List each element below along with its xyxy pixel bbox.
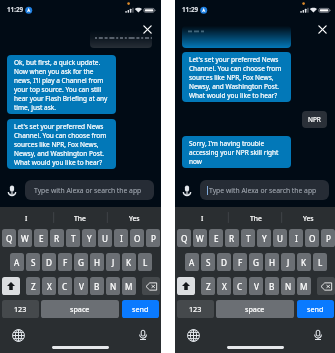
button[interactable]: Yes bbox=[107, 207, 161, 229]
button[interactable]: V bbox=[74, 277, 88, 295]
button[interactable]: space bbox=[41, 300, 119, 318]
button[interactable]: Y bbox=[257, 229, 271, 247]
button[interactable]: W bbox=[18, 229, 32, 247]
button[interactable]: A bbox=[185, 253, 199, 271]
button[interactable]: Backspace bbox=[142, 277, 160, 295]
button[interactable]: Type with Alexa or search the app bbox=[200, 180, 329, 200]
button[interactable]: U bbox=[98, 229, 112, 247]
button[interactable]: Sorry, I'm having trouble accessing your… bbox=[182, 136, 291, 168]
button[interactable]: R bbox=[225, 229, 239, 247]
button[interactable]: NPR bbox=[302, 111, 327, 128]
button[interactable]: Z bbox=[201, 277, 215, 295]
button[interactable]: The bbox=[229, 207, 282, 229]
staticText: space bbox=[245, 304, 265, 314]
button[interactable]: C bbox=[233, 277, 247, 295]
button[interactable]: Change keyboard language bbox=[187, 329, 200, 342]
staticText: space bbox=[70, 304, 90, 314]
button[interactable]: F bbox=[233, 253, 247, 271]
staticText: Let's set your preferred News Channel. Y… bbox=[14, 122, 111, 167]
button[interactable]: Dictate bbox=[138, 330, 148, 340]
button[interactable]: O bbox=[130, 229, 144, 247]
button[interactable]: Backspace bbox=[317, 277, 335, 295]
staticText: H bbox=[269, 257, 276, 268]
button[interactable]: B bbox=[265, 277, 279, 295]
button[interactable]: I bbox=[289, 229, 303, 247]
button[interactable]: I bbox=[175, 207, 229, 229]
staticText: C bbox=[237, 281, 243, 292]
button[interactable]: space bbox=[216, 300, 294, 318]
button[interactable]: T bbox=[66, 229, 80, 247]
button[interactable]: T bbox=[241, 229, 255, 247]
button[interactable]: 123 bbox=[177, 300, 214, 318]
button[interactable]: P bbox=[146, 229, 160, 247]
staticText: B bbox=[269, 281, 275, 292]
button[interactable]: 123 bbox=[2, 300, 39, 318]
staticText: Type with Alexa or search the app bbox=[209, 186, 317, 195]
button[interactable]: Q bbox=[2, 229, 16, 247]
button[interactable]: W bbox=[193, 229, 207, 247]
button[interactable]: U bbox=[273, 229, 287, 247]
button[interactable]: O bbox=[305, 229, 319, 247]
button[interactable]: G bbox=[74, 253, 88, 271]
button[interactable]: K bbox=[297, 253, 311, 271]
button[interactable]: F bbox=[58, 253, 72, 271]
button[interactable]: J bbox=[106, 253, 120, 271]
button[interactable]: N bbox=[106, 277, 120, 295]
button[interactable]: P bbox=[321, 229, 335, 247]
button[interactable]: H bbox=[265, 253, 279, 271]
button[interactable]: Y bbox=[82, 229, 96, 247]
button[interactable]: A bbox=[10, 253, 24, 271]
button[interactable]: L bbox=[138, 253, 152, 271]
button[interactable]: D bbox=[217, 253, 231, 271]
button[interactable]: Let's set your preferred News Channel. Y… bbox=[7, 119, 116, 169]
button[interactable]: E bbox=[34, 229, 48, 247]
button[interactable]: Z bbox=[26, 277, 40, 295]
button[interactable]: X bbox=[42, 277, 56, 295]
button[interactable]: G bbox=[249, 253, 263, 271]
button[interactable]: D bbox=[42, 253, 56, 271]
button[interactable]: R bbox=[50, 229, 64, 247]
button[interactable]: send bbox=[297, 300, 334, 318]
button[interactable]: S bbox=[201, 253, 215, 271]
staticText: V bbox=[79, 281, 84, 292]
button[interactable]: M bbox=[297, 277, 311, 295]
button[interactable]: Type with Alexa or search the app bbox=[25, 180, 154, 200]
button[interactable]: Voice input bbox=[180, 183, 194, 197]
staticText: W bbox=[21, 233, 29, 244]
button[interactable]: Yes bbox=[282, 207, 335, 229]
button[interactable]: M bbox=[122, 277, 136, 295]
staticText: F bbox=[63, 257, 68, 268]
button[interactable]: I bbox=[114, 229, 128, 247]
button[interactable]: Ok, but first, a quick update. Now when … bbox=[7, 55, 116, 114]
button[interactable]: Close bbox=[141, 23, 154, 36]
staticText: K bbox=[126, 257, 132, 268]
button[interactable]: C bbox=[58, 277, 72, 295]
staticText: NPR bbox=[308, 115, 321, 124]
button[interactable]: Let's set your preferred News Channel. Y… bbox=[182, 52, 291, 102]
button[interactable]: N bbox=[281, 277, 295, 295]
button[interactable]: Q bbox=[177, 229, 191, 247]
button[interactable]: J bbox=[281, 253, 295, 271]
button[interactable]: send bbox=[122, 300, 159, 318]
button[interactable]: B bbox=[90, 277, 104, 295]
staticText: 123 bbox=[189, 304, 202, 314]
button[interactable]: Voice input bbox=[5, 183, 19, 197]
button[interactable]: H bbox=[90, 253, 104, 271]
button[interactable]: Shift bbox=[2, 277, 20, 295]
button[interactable]: I bbox=[0, 207, 53, 229]
button[interactable]: Close bbox=[316, 23, 329, 36]
staticText: B bbox=[94, 281, 100, 292]
staticText: D bbox=[221, 257, 227, 268]
staticText: C bbox=[62, 281, 68, 292]
button[interactable]: E bbox=[209, 229, 223, 247]
button[interactable]: X bbox=[217, 277, 231, 295]
button[interactable]: K bbox=[122, 253, 136, 271]
button[interactable]: L bbox=[313, 253, 327, 271]
staticText: Q bbox=[181, 233, 188, 244]
button[interactable]: S bbox=[26, 253, 40, 271]
button[interactable]: V bbox=[249, 277, 263, 295]
button[interactable]: The bbox=[53, 207, 107, 229]
button[interactable]: Change keyboard language bbox=[12, 329, 25, 342]
button[interactable]: Dictate bbox=[313, 330, 323, 340]
button[interactable]: Shift bbox=[177, 277, 195, 295]
